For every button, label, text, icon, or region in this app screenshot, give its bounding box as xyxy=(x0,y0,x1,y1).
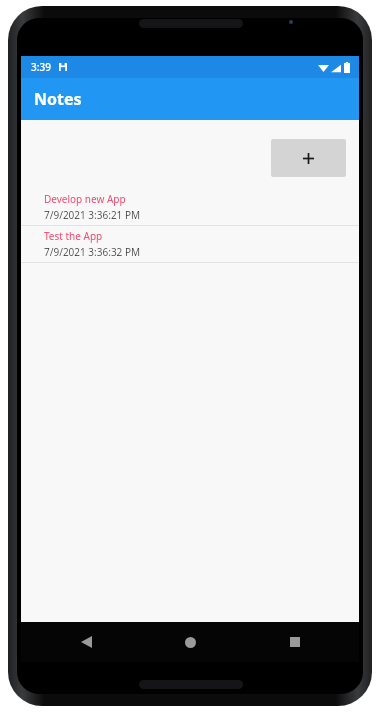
button[interactable]: Home xyxy=(150,622,230,662)
button[interactable]: Recent apps xyxy=(255,622,335,662)
button[interactable]: Develop new App xyxy=(21,189,359,226)
staticText: 7/9/2021 3:36:32 PM xyxy=(44,245,141,259)
button[interactable]: Test the App xyxy=(21,226,359,263)
staticText: Test the App xyxy=(44,229,103,243)
staticText: 3:39 xyxy=(31,60,51,74)
staticText: Notes xyxy=(34,88,82,110)
button[interactable]: Add note xyxy=(271,139,346,177)
staticText: 7/9/2021 3:36:21 PM xyxy=(44,208,141,222)
staticText: Develop new App xyxy=(44,192,126,206)
button[interactable]: Back xyxy=(46,622,126,662)
